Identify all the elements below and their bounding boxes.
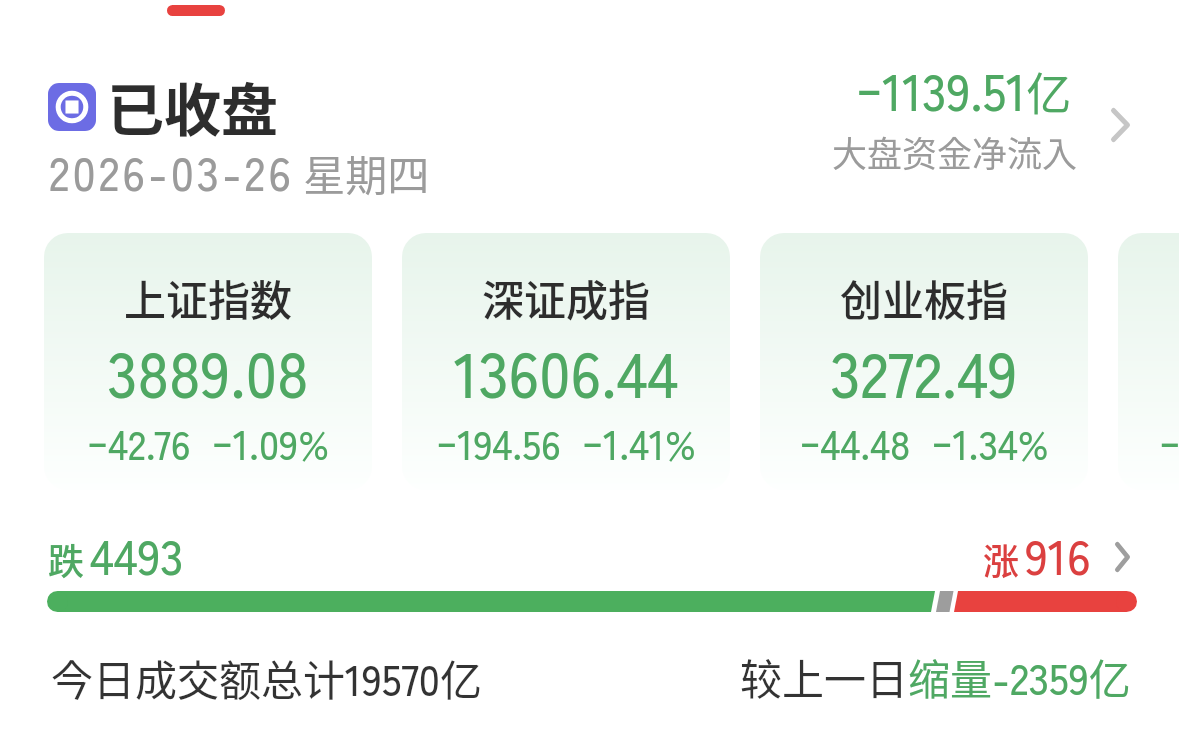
staticText: –60.23 –1.35%	[1118, 410, 1179, 472]
button[interactable]: Advance decline bar	[47, 591, 1137, 612]
staticText: 涨916	[983, 519, 1091, 579]
button[interactable]: 创业板指	[760, 233, 1088, 490]
staticText: –42.76 –1.09%	[44, 410, 372, 472]
staticText: 2026-03-26 星期四	[49, 138, 430, 205]
staticText: 创业板指	[760, 267, 1088, 328]
staticText: –1139.51亿	[856, 48, 1072, 125]
staticText: 3889.08	[44, 326, 372, 416]
other: Market status	[48, 83, 96, 131]
staticText: 今日成交额总计19570亿	[51, 647, 482, 708]
staticText: –194.56 –1.41%	[402, 410, 730, 472]
staticText: 3272.49	[760, 326, 1088, 416]
other: More	[1115, 542, 1130, 572]
button[interactable]: 涨916	[970, 511, 1140, 571]
staticText: 深证成指	[402, 267, 730, 328]
staticText: 上证指数	[44, 267, 372, 328]
staticText: 大盘资金净流入	[832, 126, 1078, 177]
button[interactable]: 沪深300	[1118, 233, 1179, 490]
staticText: 13606.44	[402, 326, 730, 416]
button[interactable]: 深证成指	[402, 233, 730, 490]
button[interactable]: Market status	[48, 65, 278, 148]
staticText: –44.48 –1.34%	[760, 410, 1088, 472]
other: More capital flow	[1111, 108, 1130, 142]
button[interactable]: 上证指数	[44, 233, 372, 490]
button[interactable]: 跌4493	[48, 519, 184, 579]
staticText: 已收盘	[107, 65, 278, 148]
staticText: 较上一日缩量-2359亿	[740, 646, 1131, 707]
button[interactable]: –1139.51亿	[820, 60, 1140, 180]
